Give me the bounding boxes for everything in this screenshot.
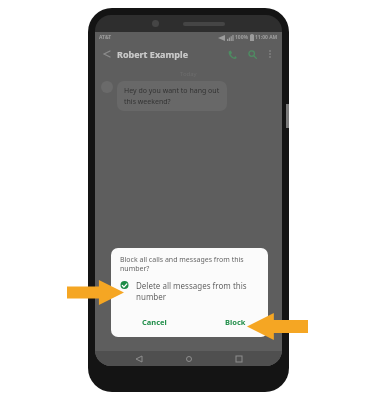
staticText: Block: [225, 317, 246, 327]
button[interactable]: Delete all messages from this number: [111, 278, 268, 304]
button[interactable]: Recents: [232, 352, 245, 365]
button[interactable]: Back: [132, 352, 145, 365]
button[interactable]: Back: [100, 47, 114, 61]
staticText: 11:00 AM: [255, 34, 278, 41]
staticText: Block all calls and messages from this n…: [120, 255, 244, 273]
staticText: Delete all messages from this number: [136, 280, 247, 302]
button[interactable]: Home: [182, 352, 195, 365]
button[interactable]: Cancel: [137, 314, 172, 330]
staticText: Today: [180, 70, 197, 78]
staticText: Cancel: [142, 317, 167, 327]
staticText: Robert Example: [117, 48, 189, 60]
staticText: Hey do you want to hang out this weekend…: [124, 86, 220, 106]
button[interactable]: Call: [224, 46, 240, 62]
staticText: AT&T: [99, 34, 112, 41]
button[interactable]: Block: [220, 314, 251, 330]
button[interactable]: More options: [263, 47, 277, 61]
staticText: 100%: [235, 34, 249, 41]
button[interactable]: Search: [244, 46, 260, 62]
